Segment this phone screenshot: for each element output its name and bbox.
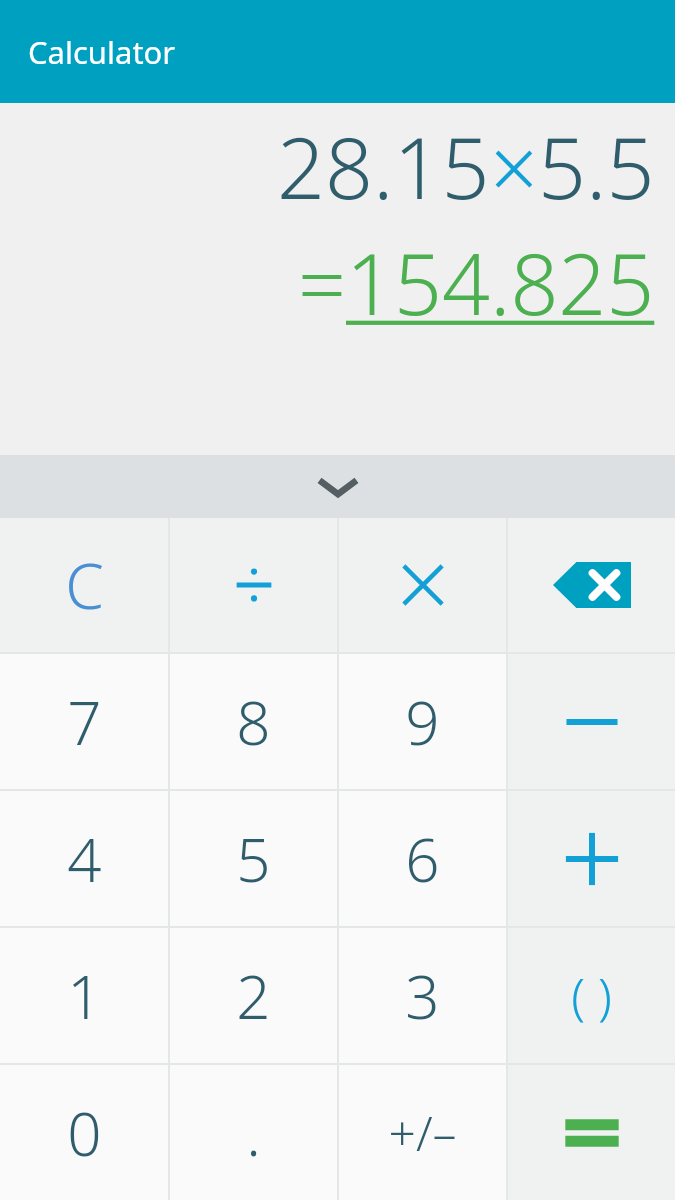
- staticText: 28.15: [277, 109, 490, 223]
- button[interactable]: Clear: [0, 518, 168, 652]
- button[interactable]: 8: [170, 654, 337, 789]
- staticText: 4: [67, 818, 102, 900]
- staticText: 154.825: [346, 225, 655, 339]
- staticText: 0: [67, 1092, 102, 1174]
- button[interactable]: 7: [0, 654, 168, 789]
- staticText: ( ): [571, 962, 612, 1030]
- staticText: 2: [236, 955, 271, 1037]
- staticText: +/–: [388, 1100, 457, 1165]
- button[interactable]: 2: [170, 928, 337, 1063]
- button[interactable]: 6: [339, 791, 506, 926]
- button[interactable]: Decimal point: [170, 1065, 337, 1200]
- staticText: 9: [405, 681, 440, 763]
- button[interactable]: 4: [0, 791, 168, 926]
- button[interactable]: 9: [339, 654, 506, 789]
- staticText: 5.5: [538, 109, 655, 223]
- staticText: 7: [67, 681, 102, 763]
- staticText: .: [246, 1092, 261, 1174]
- button[interactable]: 0: [0, 1065, 168, 1200]
- button[interactable]: Backspace: [508, 518, 675, 652]
- button[interactable]: Parentheses: [508, 928, 675, 1063]
- button[interactable]: Divide: [170, 518, 337, 652]
- button[interactable]: 3: [339, 928, 506, 1063]
- staticText: 5: [236, 818, 271, 900]
- staticText: C: [65, 543, 104, 627]
- staticText: 3: [405, 955, 440, 1037]
- button[interactable]: Plus minus: [339, 1065, 506, 1200]
- button[interactable]: 1: [0, 928, 168, 1063]
- button[interactable]: Equals: [508, 1065, 675, 1200]
- staticText: 8: [236, 681, 271, 763]
- staticText: Calculator: [28, 31, 176, 73]
- button[interactable]: Collapse keypad: [0, 455, 675, 518]
- button[interactable]: Plus: [508, 791, 675, 926]
- staticText: =: [298, 225, 346, 339]
- staticText: 6: [405, 818, 440, 900]
- button[interactable]: Multiply: [339, 518, 506, 652]
- button[interactable]: Minus: [508, 654, 675, 789]
- staticText: ×: [490, 109, 538, 223]
- staticText: 1: [67, 955, 102, 1037]
- button[interactable]: 5: [170, 791, 337, 926]
